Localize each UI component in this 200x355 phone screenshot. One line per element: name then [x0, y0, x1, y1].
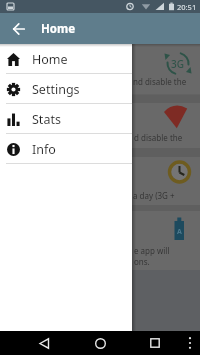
- staticText: a day (3G +: [133, 190, 175, 201]
- staticText: nd disable the: [133, 76, 187, 87]
- button[interactable]: Home: [0, 44, 132, 74]
- staticText: A: [177, 227, 182, 237]
- button[interactable]: Info: [0, 134, 132, 164]
- staticText: Info: [32, 141, 56, 158]
- button[interactable]: [32, 331, 56, 355]
- button[interactable]: Stats: [0, 104, 132, 134]
- staticText: 20:51: [177, 2, 197, 12]
- button[interactable]: [182, 331, 198, 355]
- button[interactable]: [88, 331, 112, 355]
- staticText: ons.: [134, 256, 150, 267]
- staticText: d disable the: [134, 132, 183, 143]
- staticText: Stats: [32, 111, 61, 128]
- staticText: Settings: [32, 81, 80, 98]
- staticText: e app will: [134, 245, 170, 256]
- staticText: 3G: [171, 57, 184, 71]
- staticText: Home: [32, 51, 68, 68]
- button[interactable]: Settings: [0, 74, 132, 104]
- staticText: Home: [41, 21, 76, 37]
- button[interactable]: [0, 13, 37, 44]
- button[interactable]: [143, 331, 167, 355]
